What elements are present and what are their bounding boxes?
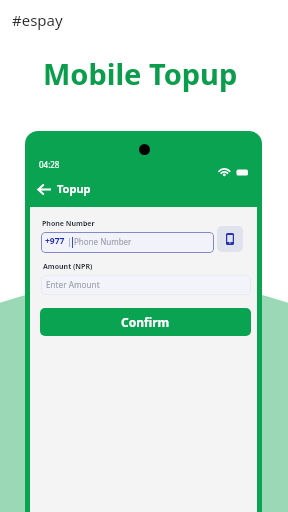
- staticText: +977: [45, 235, 65, 247]
- staticText: Phone Number: [42, 219, 95, 229]
- staticText: Topup: [57, 181, 91, 196]
- staticText: Enter Amount: [46, 279, 100, 290]
- button[interactable]: Choose contact: [217, 226, 243, 252]
- button[interactable]: +977: [41, 232, 214, 253]
- staticText: Phone Number: [74, 236, 132, 247]
- button[interactable]: Confirm: [40, 308, 251, 336]
- staticText: #espay: [12, 10, 63, 30]
- button[interactable]: Back: [35, 181, 97, 199]
- staticText: 04:28: [39, 159, 60, 170]
- button[interactable]: Enter Amount: [41, 275, 251, 295]
- staticText: Amount (NPR): [43, 262, 93, 272]
- staticText: Mobile Topup: [43, 54, 238, 93]
- staticText: Confirm: [121, 314, 170, 330]
